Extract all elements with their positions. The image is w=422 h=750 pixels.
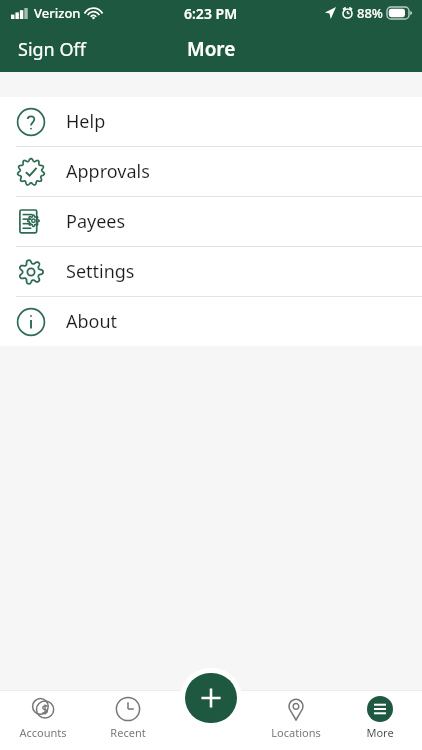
button[interactable]: Payees [0,197,422,246]
staticText: Approvals [66,159,150,184]
button[interactable]: Recent [85,690,170,750]
button[interactable]: Settings [0,247,422,296]
button[interactable]: About [0,297,422,346]
button[interactable]: Accounts [0,690,85,750]
staticText: Recent [110,725,146,740]
staticText: 6:23 PM [184,4,238,23]
button[interactable]: Locations [254,690,338,750]
button[interactable]: More [338,690,422,750]
staticText: Settings [66,259,135,284]
staticText: Verizon [34,4,81,22]
button[interactable]: Help [0,97,422,146]
button[interactable]: Add [185,673,237,723]
staticText: Payees [66,209,126,234]
staticText: About [66,309,118,334]
button[interactable]: Sign Off [0,29,104,70]
staticText: Help [66,109,106,134]
staticText: 88% [357,4,383,22]
button[interactable]: Approvals [0,147,422,196]
staticText: More [366,725,394,740]
staticText: More [187,36,236,62]
staticText: Sign Off [18,37,86,62]
staticText: Locations [271,725,321,740]
staticText: Accounts [19,725,67,740]
